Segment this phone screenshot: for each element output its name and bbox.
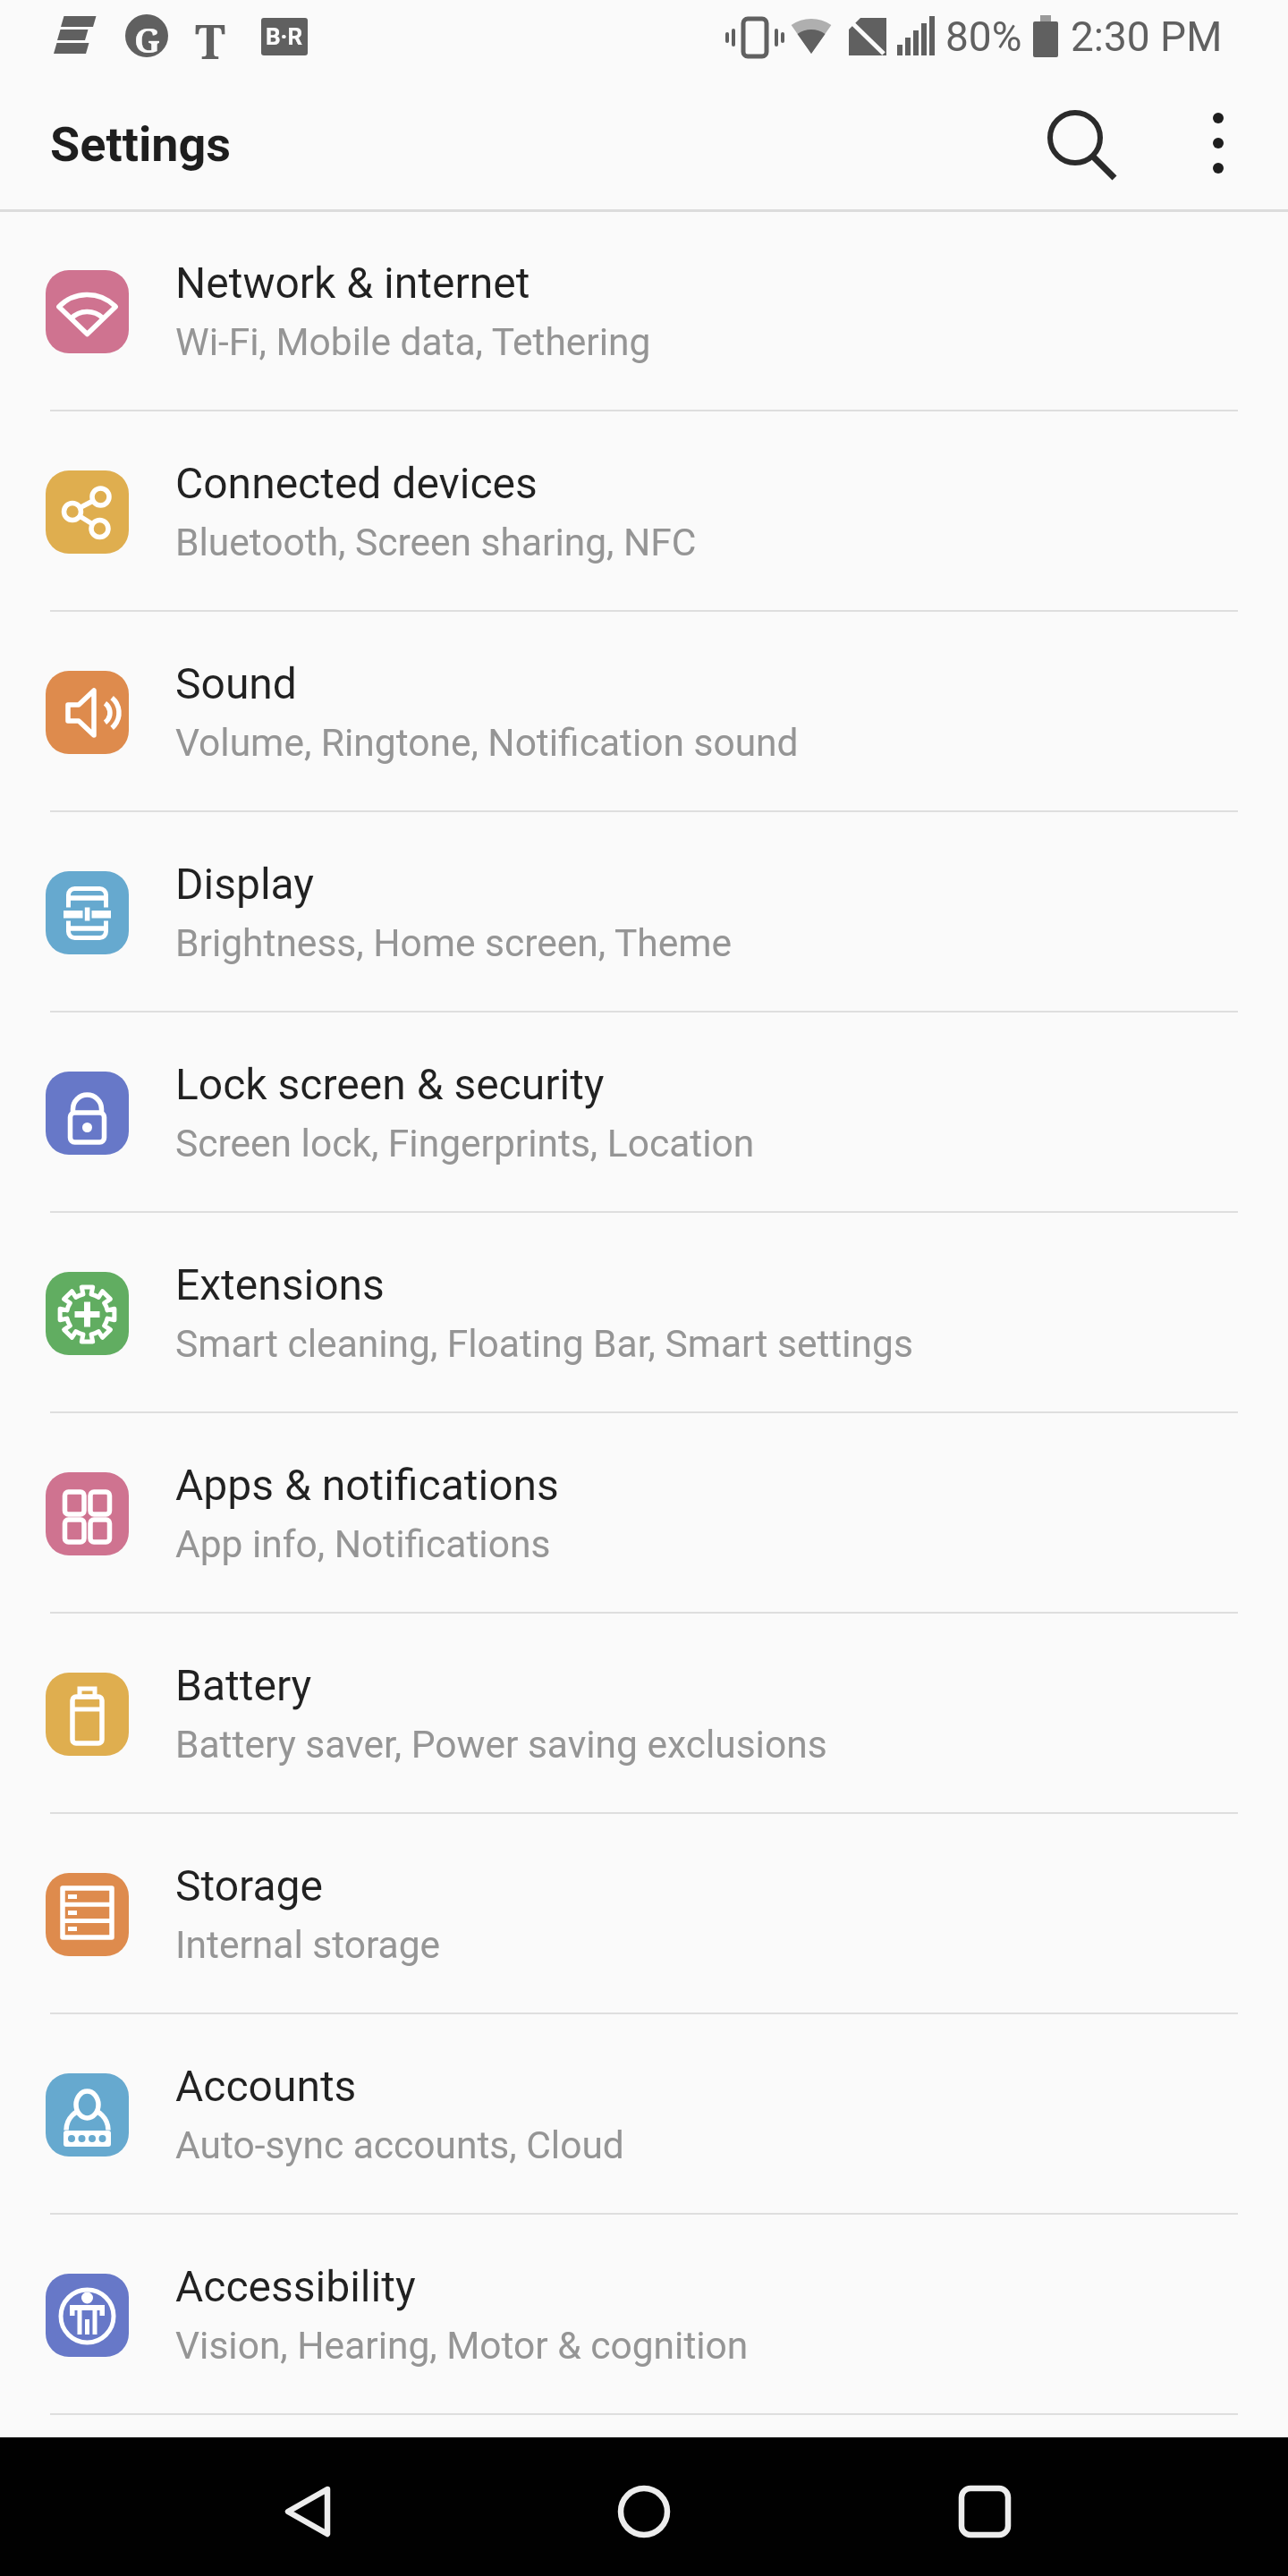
staticText: Accessibility [175,2261,416,2311]
staticText: Settings [50,116,232,173]
staticText: Screen lock, Fingerprints, Location [175,1122,755,1166]
staticText: Battery [175,1660,312,1710]
button[interactable]: Sound [0,612,1288,812]
button[interactable]: Connected devices [0,411,1288,612]
staticText: Wi-Fi, Mobile data, Tethering [175,320,651,365]
staticText: Sound [175,658,297,708]
staticText: 80% [945,13,1022,61]
staticText: G [134,16,161,63]
staticText: Extensions [175,1259,385,1309]
staticText: Display [175,859,315,909]
staticText: Internal storage [175,1923,441,1968]
button[interactable] [1030,93,1131,193]
button[interactable] [233,2437,376,2576]
button[interactable]: Accounts [0,2014,1288,2215]
staticText: T [195,9,225,72]
button[interactable]: Extensions [0,1213,1288,1413]
button[interactable] [912,2437,1055,2576]
staticText: Volume, Ringtone, Notification sound [175,721,799,766]
button[interactable]: Display [0,812,1288,1013]
button[interactable]: Storage [0,1814,1288,2014]
button[interactable]: Lock screen & security [0,1013,1288,1213]
staticText: Apps & notifications [175,1460,559,1510]
staticText: Brightness, Home screen, Theme [175,921,732,966]
button[interactable]: Battery [0,1614,1288,1814]
staticText: 2:30 PM [1071,13,1223,61]
button[interactable] [572,2437,716,2576]
staticText: App info, Notifications [175,1522,551,1567]
staticText: Battery saver, Power saving exclusions [175,1723,827,1767]
button[interactable] [1174,93,1263,193]
button[interactable]: Accessibility [0,2215,1288,2415]
staticText: Auto-sync accounts, Cloud [175,2123,624,2168]
staticText: Accounts [175,2061,357,2111]
staticText: Connected devices [175,458,538,508]
button[interactable]: Apps & notifications [0,1413,1288,1614]
staticText: Lock screen & security [175,1059,605,1109]
button[interactable]: Network & internet [0,211,1288,411]
staticText: Bluetooth, Screen sharing, NFC [175,521,697,565]
staticText: Smart cleaning, Floating Bar, Smart sett… [175,1322,913,1367]
staticText: B·R [266,23,303,50]
staticText: Network & internet [175,258,530,308]
staticText: Vision, Hearing, Motor & cognition [175,2324,749,2368]
staticText: Storage [175,1860,323,1911]
